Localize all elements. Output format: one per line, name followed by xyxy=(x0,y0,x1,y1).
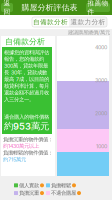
staticText: 建議購屋總價/萬元 xyxy=(68,29,110,36)
staticText: 約715萬元 xyxy=(3,156,26,163)
staticText: 自備款分析 xyxy=(5,36,45,47)
staticText: 適合購入的物件價格 xyxy=(4,113,49,120)
staticText: 4000 xyxy=(95,44,107,50)
staticText: 根據您的資料與評估報告，您的備款約 300萬，貸款年限最長 30年，貸款成數最高… xyxy=(4,49,49,103)
button[interactable]: 還款力分析 xyxy=(69,17,107,27)
staticText: 負擔沉重的物件價值： xyxy=(3,136,53,143)
staticText: 個人實款 xyxy=(19,182,39,189)
staticText: 推薦物件 xyxy=(87,0,108,16)
button[interactable]: 返回 xyxy=(1,3,13,12)
staticText: 自備款分析 xyxy=(33,18,68,26)
staticText: 3000 xyxy=(95,77,107,83)
staticText: 2000 xyxy=(95,110,107,116)
button[interactable]: 個人實款 xyxy=(14,182,44,189)
staticText: 負擔沉重 xyxy=(19,190,39,196)
staticText: 約953萬元 xyxy=(4,120,49,132)
staticText: 返回 xyxy=(3,0,10,16)
button[interactable]: 推薦物件 xyxy=(86,3,110,12)
staticText: 還款力分析 xyxy=(70,18,105,26)
button[interactable]: 負擔沉重 xyxy=(14,190,44,196)
button[interactable]: 自備款分析 xyxy=(32,17,69,27)
staticText: 負擔輕鬆的物件價值： xyxy=(3,149,53,156)
button[interactable]: 負擔輕鬆 xyxy=(46,182,76,189)
staticText: 1000 xyxy=(96,143,107,149)
button[interactable]: 不適合購屋 xyxy=(46,190,81,196)
staticText: 負擔輕鬆 xyxy=(51,182,71,189)
staticText: 約1430萬元以上 xyxy=(3,143,39,149)
staticText: 不適合購屋 xyxy=(51,190,76,196)
staticText: 購屋分析評估表 xyxy=(21,2,77,13)
